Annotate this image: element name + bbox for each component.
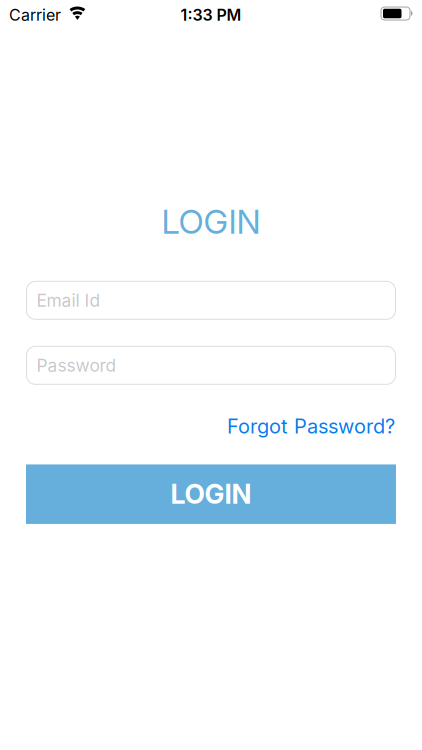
staticText <box>36 355 41 375</box>
textField[interactable] <box>36 290 395 310</box>
staticText: Email Id <box>36 290 100 310</box>
staticText: 1:33 PM <box>180 6 241 24</box>
textField[interactable] <box>36 355 395 375</box>
staticText: LOGIN <box>170 478 251 510</box>
staticText: LOGIN <box>161 202 260 241</box>
staticText: Carrier <box>9 6 61 24</box>
staticText <box>36 290 41 310</box>
staticText: Forgot Password? <box>227 414 395 438</box>
button[interactable]: LOGIN <box>26 464 396 524</box>
button[interactable]: Forgot Password? <box>227 414 395 438</box>
staticText: Password <box>36 355 116 375</box>
